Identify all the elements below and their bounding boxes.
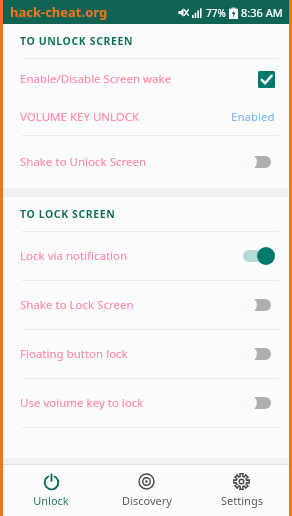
staticText: Enable/Disable Screen wake xyxy=(20,71,258,87)
button[interactable]: Off xyxy=(239,295,275,315)
staticText: Lock via notification xyxy=(20,248,239,264)
staticText: VOLUME KEY UNLOCK xyxy=(20,109,231,125)
staticText: Enabled xyxy=(231,109,275,125)
button[interactable]: Enable/Disable Screen wake xyxy=(3,59,289,99)
staticText: Use volume key to lock xyxy=(20,395,239,411)
button[interactable]: VOLUME KEY UNLOCK xyxy=(3,99,289,135)
staticText: 8:36 AM xyxy=(241,5,283,20)
other: Checked xyxy=(258,71,275,88)
button[interactable]: Off xyxy=(239,152,275,172)
button[interactable]: Off xyxy=(239,393,275,413)
staticText: Shake to Lock Screen xyxy=(20,297,239,313)
button[interactable]: Use volume key to lock xyxy=(3,379,289,427)
staticText: hack-cheat.org xyxy=(10,3,108,21)
button[interactable]: Unlock xyxy=(3,465,99,516)
button[interactable]: Floating button lock xyxy=(3,330,289,378)
button[interactable]: Settings xyxy=(194,465,289,516)
staticText: Discovery xyxy=(122,493,172,508)
staticText: Settings xyxy=(221,493,263,508)
staticText: Shake to Unlock Screen xyxy=(20,154,239,170)
staticText: 77% xyxy=(206,6,226,20)
staticText: TO UNLOCK SCREEN xyxy=(20,34,134,48)
button[interactable]: Off xyxy=(239,344,275,364)
button[interactable]: Shake to Unlock Screen xyxy=(3,136,289,188)
staticText: Unlock xyxy=(33,493,69,508)
button[interactable]: Discovery xyxy=(99,465,194,516)
staticText: TO LOCK SCREEN xyxy=(20,207,116,221)
staticText: Floating button lock xyxy=(20,346,239,362)
button[interactable]: On xyxy=(239,246,275,266)
button[interactable]: Shake to Lock Screen xyxy=(3,281,289,329)
button[interactable]: Lock via notification xyxy=(3,232,289,280)
